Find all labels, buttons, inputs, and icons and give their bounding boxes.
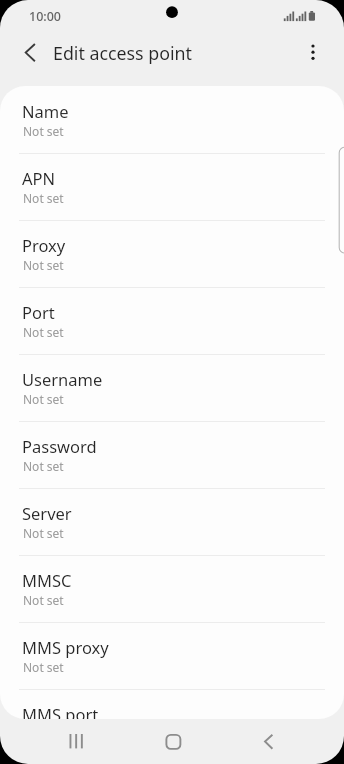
staticText: Not set xyxy=(23,525,64,541)
staticText: Name xyxy=(22,100,69,122)
staticText: MMSC xyxy=(22,569,72,591)
button[interactable]: Back xyxy=(241,719,297,764)
staticText: MMS proxy xyxy=(22,636,109,658)
button[interactable]: Password xyxy=(0,422,344,489)
button[interactable]: Navigate up xyxy=(13,36,46,69)
staticText: Not set xyxy=(23,391,64,407)
button[interactable]: Username xyxy=(0,355,344,422)
staticText: Not set xyxy=(23,123,64,139)
button[interactable]: More options xyxy=(297,36,330,69)
staticText: Server xyxy=(22,502,72,524)
staticText: Not set xyxy=(23,592,64,608)
staticText: MMS port xyxy=(22,703,99,719)
button[interactable]: MMS proxy xyxy=(0,623,344,690)
staticText: 10:00 xyxy=(29,8,62,25)
button[interactable]: Port xyxy=(0,288,344,355)
staticText: Proxy xyxy=(22,234,66,256)
button[interactable]: APN xyxy=(0,154,344,221)
button[interactable]: Name xyxy=(0,87,344,154)
button[interactable]: Server xyxy=(0,489,344,556)
staticText: Not set xyxy=(23,659,64,675)
staticText: APN xyxy=(22,167,56,189)
staticText: Not set xyxy=(23,458,64,474)
staticText: Not set xyxy=(23,190,64,206)
staticText: Password xyxy=(22,435,97,457)
button[interactable]: MMSC xyxy=(0,556,344,623)
button[interactable]: Home xyxy=(145,719,201,764)
button[interactable]: Recent apps xyxy=(48,719,104,764)
staticText: Not set xyxy=(23,257,64,273)
staticText: Edit access point xyxy=(53,41,192,65)
staticText: Username xyxy=(22,368,103,390)
button[interactable]: Proxy xyxy=(0,221,344,288)
button[interactable]: MMS port xyxy=(0,690,344,719)
staticText: Not set xyxy=(23,324,64,340)
staticText: Port xyxy=(22,301,55,323)
